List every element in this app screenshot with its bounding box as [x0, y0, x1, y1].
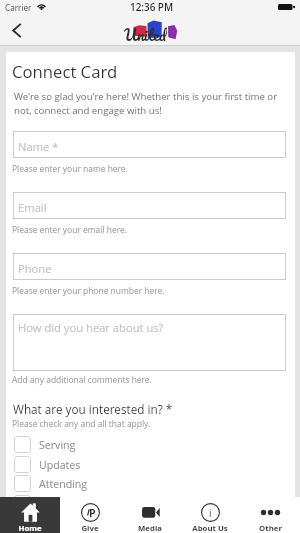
button[interactable]: Home [0, 497, 60, 533]
staticText: Carrier [5, 2, 32, 13]
staticText: Please enter your email here. [12, 224, 127, 236]
staticText: 12:36 PM [130, 0, 174, 13]
staticText: P [89, 506, 96, 520]
button[interactable]: Back [0, 14, 36, 46]
button[interactable]: How did you hear about us? [13, 314, 286, 371]
staticText: Phone [18, 261, 52, 276]
other: Give [81, 503, 100, 522]
staticText: United [124, 22, 167, 46]
staticText: Attending [39, 477, 88, 491]
button[interactable]: Give [60, 497, 120, 533]
button[interactable]: Other [240, 497, 300, 533]
button[interactable]: Other [14, 495, 287, 512]
other: Other [261, 503, 280, 522]
button[interactable]: About Us [180, 497, 240, 533]
staticText: About Us [192, 523, 228, 533]
button[interactable]: Name * [13, 131, 286, 158]
staticText: Add any additional comments here. [12, 374, 152, 386]
staticText: i [209, 506, 212, 520]
other: About Us [201, 503, 220, 522]
button[interactable]: Phone [13, 253, 286, 280]
staticText: Media [138, 523, 162, 533]
other: Home [21, 503, 40, 522]
staticText: Serving [39, 438, 76, 452]
staticText: We're so glad you're here! Whether this … [14, 90, 278, 117]
staticText: Please enter your phone number here. [12, 285, 165, 297]
button[interactable]: Serving [14, 436, 287, 453]
staticText: Other [39, 497, 68, 511]
staticText: How did you hear about us? [18, 320, 164, 335]
button[interactable]: Email [13, 192, 286, 219]
button[interactable]: Updates [14, 456, 287, 473]
staticText: Give [81, 523, 99, 533]
button[interactable]: Attending [14, 475, 287, 492]
staticText: Email [18, 200, 47, 215]
staticText: Home [18, 523, 42, 533]
staticText: Other [259, 523, 282, 533]
staticText: Name * [18, 139, 59, 154]
staticText: What are you interested in? * [13, 401, 173, 417]
staticText: Updates [39, 458, 81, 472]
staticText: Connect Card [12, 60, 118, 83]
button[interactable]: Media [120, 497, 180, 533]
staticText: Please enter your name here. [12, 163, 128, 175]
other: Media [141, 503, 160, 522]
staticText: Please check any and all that apply. [12, 418, 151, 430]
